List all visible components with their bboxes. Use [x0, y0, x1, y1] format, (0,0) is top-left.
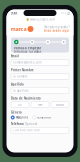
staticText: ◦◦◦ ▯ [60, 11, 69, 15]
staticText: Tu nombre [13, 75, 28, 78]
staticText: 9:41 [10, 10, 17, 16]
staticText: ¿Ya estás registrado? [43, 25, 69, 29]
staticText: AAAA [56, 103, 64, 106]
staticText: Masculino [16, 116, 29, 119]
staticText: Femenino [37, 116, 51, 119]
staticText: Vamos a empezar [14, 46, 41, 50]
staticText: Género [11, 111, 22, 114]
staticText: www.ejemplo.com [29, 18, 54, 21]
staticText: Opcional [25, 122, 37, 126]
staticText: Primer Nombre [11, 68, 34, 72]
staticText: Data de Nacimiento [11, 97, 41, 100]
staticText: +34 600 000 000 [13, 128, 40, 132]
staticText: Inicia sesión aquí [43, 29, 69, 32]
staticText: MM [38, 103, 42, 106]
staticText: nombre@correo.com [13, 61, 41, 64]
staticText: DD [18, 103, 22, 106]
staticText: marca [10, 25, 26, 33]
staticText: 🔒 [25, 18, 28, 21]
staticText: Introduce tus datos [14, 50, 41, 53]
staticText: Tu apellido [13, 89, 29, 92]
staticText: Email [11, 54, 19, 58]
staticText: Teléfono [11, 122, 24, 126]
staticText: Apellido [11, 83, 24, 86]
